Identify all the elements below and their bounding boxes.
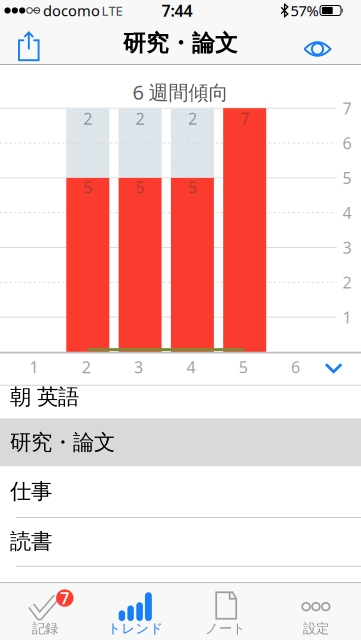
staticText: 1 xyxy=(29,356,38,378)
button[interactable]: 朝 英語 xyxy=(0,386,361,418)
staticText: 研究・論文 xyxy=(10,429,115,455)
staticText: 5 xyxy=(239,356,248,378)
staticText: 7:44 xyxy=(161,0,192,21)
staticText: 4 xyxy=(186,356,195,378)
staticText: 3 xyxy=(342,237,351,258)
staticText: トレンド xyxy=(107,620,163,637)
staticText: 5 xyxy=(83,176,92,198)
staticText: docomo xyxy=(43,1,100,20)
staticText: 仕事 xyxy=(10,478,52,504)
staticText: 記録 xyxy=(32,620,58,637)
button[interactable]: 7 xyxy=(0,582,90,640)
staticText: 7 xyxy=(60,587,69,609)
staticText: 7 xyxy=(240,108,249,129)
staticText: 2 xyxy=(188,108,197,129)
staticText: 6 週間傾向 xyxy=(132,79,228,105)
staticText: 2 xyxy=(82,356,91,378)
staticText: 4 xyxy=(342,202,351,223)
staticText: 5 xyxy=(342,167,351,188)
button[interactable]: 設定 xyxy=(271,582,361,640)
staticText: 6 xyxy=(291,356,300,378)
staticText: ノート xyxy=(205,620,246,637)
staticText: 設定 xyxy=(303,620,329,637)
button[interactable]: トレンド xyxy=(90,582,180,640)
staticText: 57% xyxy=(290,1,318,20)
button[interactable]: 研究・論文 xyxy=(0,418,361,466)
staticText: 2 xyxy=(342,272,351,293)
staticText: 5 xyxy=(188,176,197,198)
button[interactable]: 仕事 xyxy=(0,466,361,517)
button[interactable] xyxy=(6,24,50,68)
button[interactable]: 読書 xyxy=(0,518,361,566)
staticText: 3 xyxy=(134,356,143,378)
staticText: 2 xyxy=(136,108,145,129)
staticText: 1 xyxy=(342,306,351,328)
staticText: LTE xyxy=(101,2,122,19)
staticText: 6 xyxy=(342,132,351,154)
staticText: 読書 xyxy=(10,528,52,554)
button[interactable] xyxy=(319,354,348,382)
staticText: 朝 英語 xyxy=(10,384,79,410)
staticText: 2 xyxy=(83,108,92,129)
button[interactable] xyxy=(295,34,339,64)
staticText: 7 xyxy=(342,98,351,119)
staticText: 研究・論文 xyxy=(123,29,238,57)
button[interactable]: ノート xyxy=(181,582,271,640)
staticText: 5 xyxy=(136,176,145,198)
